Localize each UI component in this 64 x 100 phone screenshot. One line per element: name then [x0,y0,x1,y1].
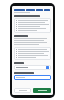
button[interactable]: Open dropdown [14,65,51,70]
other: Open dropdown [46,66,49,69]
button[interactable] [14,88,31,93]
button[interactable] [33,88,51,93]
button[interactable] [14,75,51,80]
